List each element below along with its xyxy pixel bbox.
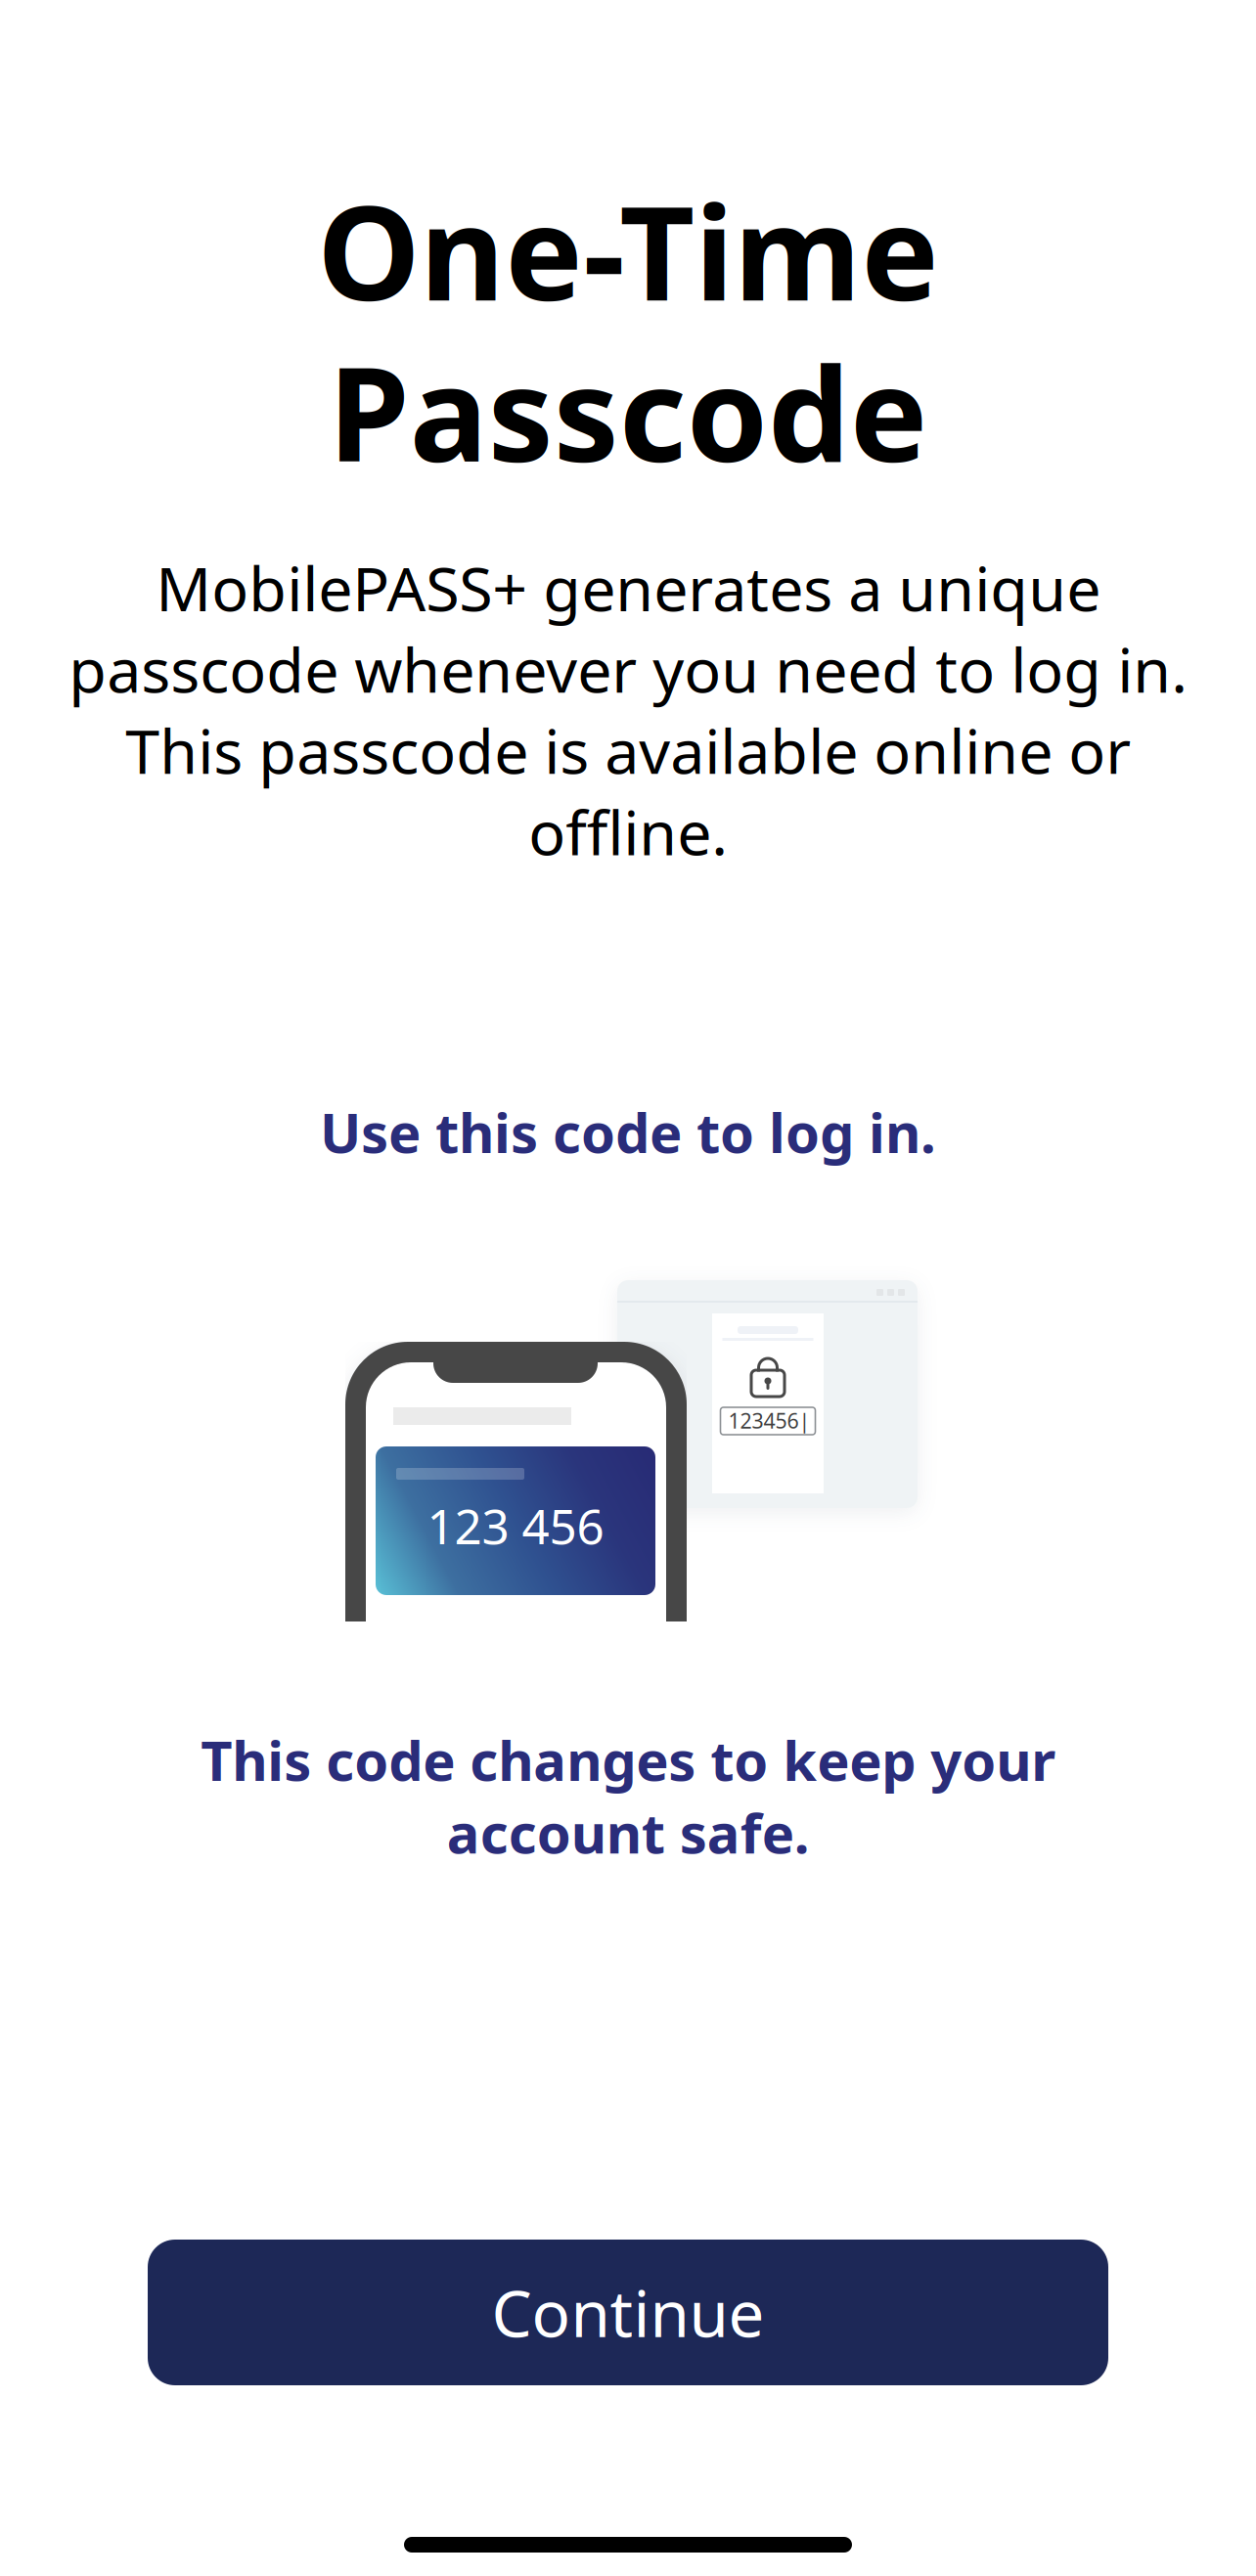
staticText: This code changes to keep your account s… bbox=[201, 1723, 1055, 1869]
staticText: MobilePASS+ generates a unique passcode … bbox=[68, 547, 1188, 872]
staticText: One-Time Passcode bbox=[317, 163, 939, 498]
staticText: 123 456 bbox=[427, 1493, 604, 1557]
staticText: 123456| bbox=[728, 1407, 810, 1434]
staticText: Use this code to log in. bbox=[320, 1095, 936, 1168]
staticText: Continue bbox=[492, 2270, 764, 2355]
button[interactable]: Continue bbox=[148, 2240, 1108, 2385]
